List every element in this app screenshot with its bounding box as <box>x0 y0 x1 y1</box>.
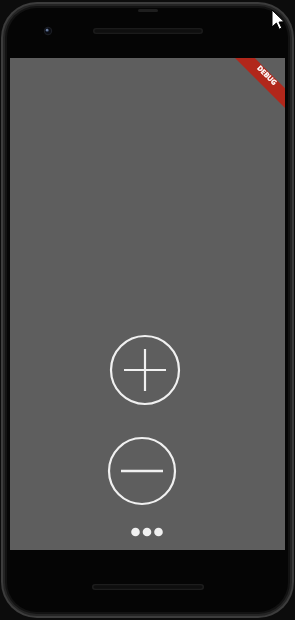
button[interactable]: Increase <box>105 330 185 410</box>
button[interactable]: More options <box>117 518 177 546</box>
button[interactable]: Decrease <box>102 431 182 511</box>
